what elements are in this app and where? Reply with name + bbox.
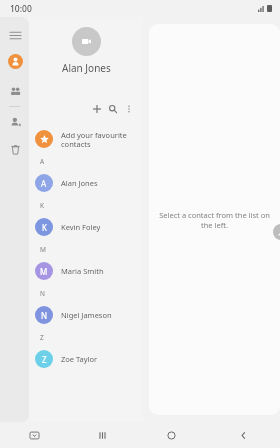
button[interactable]: Z xyxy=(29,345,143,373)
button[interactable]: Edit xyxy=(273,224,280,240)
button[interactable]: Menu xyxy=(4,24,26,46)
staticText: Select a contact from the list on the le… xyxy=(159,210,270,230)
button[interactable]: A xyxy=(29,169,143,197)
button[interactable]: Trash xyxy=(4,138,26,160)
button[interactable]: M xyxy=(29,257,143,285)
button[interactable]: Contacts xyxy=(4,80,26,102)
button[interactable]: N xyxy=(29,301,143,329)
button[interactable]: Add contact xyxy=(4,111,26,133)
button[interactable]: Search xyxy=(105,101,121,117)
staticText: A xyxy=(41,178,47,189)
button[interactable]: Change photo xyxy=(72,27,101,56)
button[interactable]: Home xyxy=(137,422,206,448)
staticText: M xyxy=(40,266,48,277)
button[interactable]: More options xyxy=(121,101,137,117)
button[interactable]: Hide keyboard xyxy=(0,422,68,448)
staticText: Z xyxy=(42,354,47,365)
button[interactable]: Profile xyxy=(4,50,26,72)
staticText: K xyxy=(42,222,47,233)
staticText: A xyxy=(40,157,45,166)
staticText: 10:00 xyxy=(10,3,32,15)
button[interactable]: Add xyxy=(89,101,105,117)
staticText: Zoe Taylor xyxy=(61,354,98,364)
button[interactable]: Back xyxy=(206,422,280,448)
staticText: Kevin Foley xyxy=(61,222,101,232)
button[interactable]: K xyxy=(29,213,143,241)
staticText: Alan Jones xyxy=(62,61,111,75)
button[interactable]: Recents xyxy=(68,422,137,448)
staticText: N xyxy=(40,289,45,298)
staticText: M xyxy=(40,245,46,254)
staticText: N xyxy=(41,310,48,321)
staticText: Nigel Jameson xyxy=(61,310,112,320)
staticText: K xyxy=(40,201,45,210)
staticText: Add your favourite contacts xyxy=(61,130,127,149)
staticText: Alan Jones xyxy=(61,178,98,188)
staticText: Z xyxy=(40,333,44,342)
staticText: Maria Smith xyxy=(61,266,104,276)
button[interactable]: Add your favourite contacts xyxy=(29,125,143,153)
